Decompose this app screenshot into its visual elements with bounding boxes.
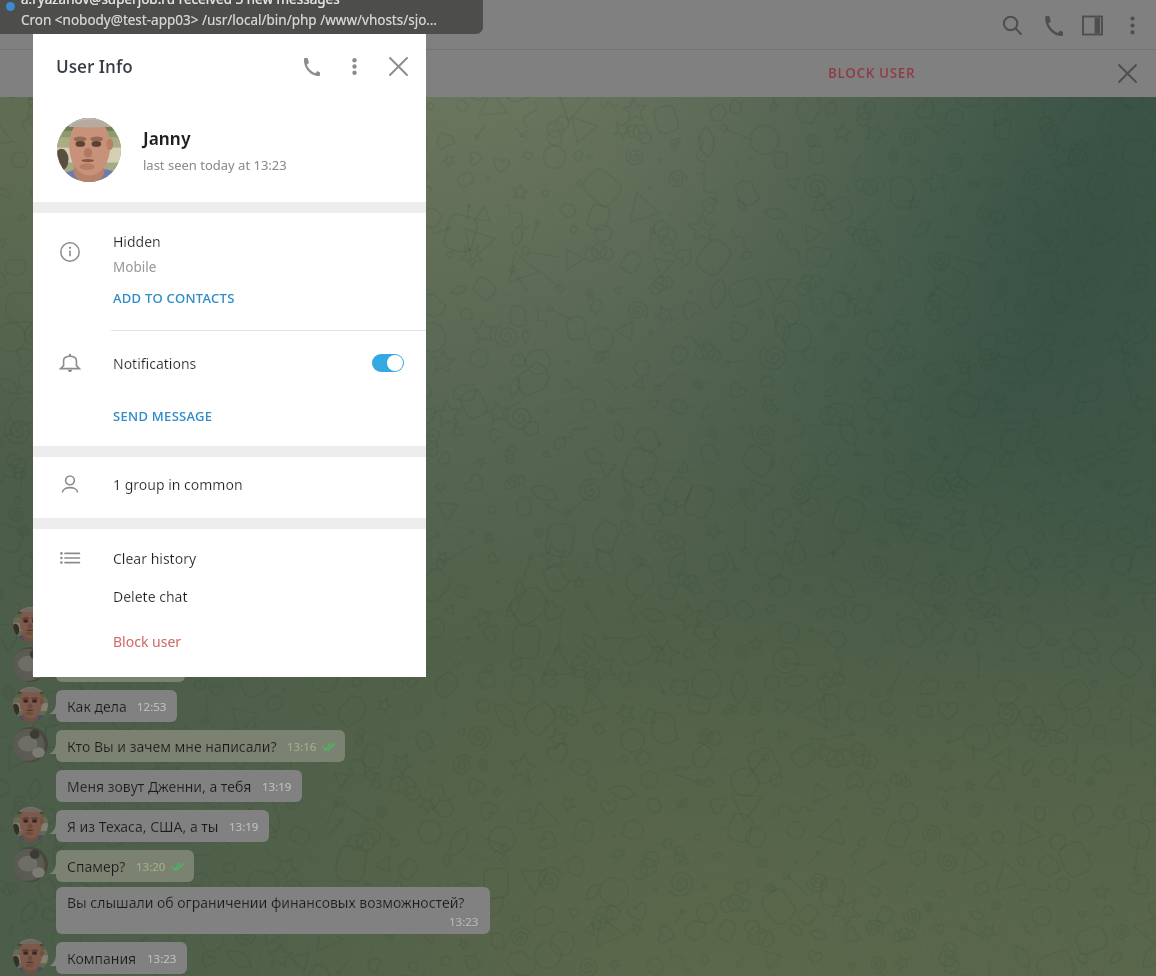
staticText: Меня зовут Дженни, а тебя bbox=[67, 777, 252, 796]
staticText: 13:23 bbox=[147, 951, 177, 967]
staticText: Компания bbox=[67, 949, 137, 968]
staticText: Janny bbox=[143, 127, 191, 150]
button[interactable]: Close bbox=[376, 44, 420, 88]
button[interactable]: Delete chat bbox=[33, 577, 426, 615]
staticText: 13:20 bbox=[136, 859, 166, 875]
button[interactable]: Block user bbox=[33, 618, 426, 664]
staticText: Mobile bbox=[113, 258, 157, 276]
button[interactable]: Привет bbox=[56, 650, 185, 682]
staticText: 13:19 bbox=[262, 779, 292, 795]
button[interactable]: Clear history bbox=[33, 529, 426, 587]
button[interactable]: Call bbox=[288, 44, 332, 88]
staticText: Notifications bbox=[113, 354, 197, 373]
staticText: Я из Техаса, США, а ты bbox=[67, 817, 219, 836]
button[interactable]: Вы слышали об ограничении финансовых воз… bbox=[56, 887, 490, 934]
staticText: Как дела bbox=[67, 697, 127, 716]
button[interactable]: Кто Вы и зачем мне написали? bbox=[56, 730, 345, 762]
button[interactable]: Я из Техаса, США, а ты bbox=[56, 810, 269, 842]
button[interactable]: Спамер? bbox=[56, 850, 194, 882]
button[interactable]: 1 group in common bbox=[33, 457, 426, 512]
staticText: 13:16 bbox=[287, 739, 317, 755]
staticText: 13:23 bbox=[449, 914, 479, 930]
button[interactable]: Привет bbox=[56, 610, 167, 642]
staticText: Спамер? bbox=[67, 857, 126, 876]
staticText: Block user bbox=[113, 632, 182, 651]
button[interactable]: Notifications bbox=[33, 331, 426, 395]
staticText: Clear history bbox=[113, 549, 197, 568]
staticText: last seen today at 13:23 bbox=[143, 156, 287, 174]
button[interactable]: Notifications toggle bbox=[372, 354, 404, 372]
button[interactable]: BLOCK USER bbox=[814, 57, 930, 89]
button[interactable]: More options bbox=[332, 44, 376, 88]
button[interactable]: More options bbox=[1112, 5, 1152, 45]
staticText: SEND MESSAGE bbox=[113, 407, 213, 425]
staticText: 1 group in common bbox=[113, 475, 243, 494]
button[interactable]: ADD TO CONTACTS bbox=[33, 278, 426, 318]
button[interactable]: Меня зовут Дженни, а тебя bbox=[56, 770, 302, 802]
staticText: Cron <nobody@test-app03> /usr/local/bin/… bbox=[21, 11, 438, 29]
staticText: Delete chat bbox=[113, 587, 188, 606]
staticText: Кто Вы и зачем мне написали? bbox=[67, 737, 277, 756]
button[interactable]: Close block bar bbox=[1109, 55, 1145, 91]
button[interactable]: Компания bbox=[56, 942, 187, 974]
button[interactable]: Search bbox=[992, 5, 1032, 45]
button[interactable]: Call bbox=[1032, 5, 1072, 45]
staticText: a.ryazanov@superjob.ru received 3 new me… bbox=[21, 0, 340, 8]
button[interactable]: SEND MESSAGE bbox=[33, 395, 426, 436]
staticText: 13:19 bbox=[229, 819, 259, 835]
button[interactable]: Как дела bbox=[56, 690, 177, 722]
button[interactable]: Split view bbox=[1072, 5, 1112, 45]
staticText: ADD TO CONTACTS bbox=[113, 289, 235, 307]
staticText: BLOCK USER bbox=[828, 64, 916, 82]
staticText: Hidden bbox=[113, 232, 161, 251]
staticText: User Info bbox=[56, 55, 133, 78]
staticText: 12:53 bbox=[137, 699, 167, 715]
staticText: Вы слышали об ограничении финансовых воз… bbox=[67, 893, 465, 912]
